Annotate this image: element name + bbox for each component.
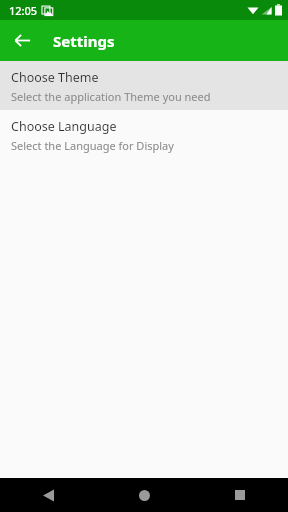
button[interactable]: Home bbox=[96, 478, 192, 512]
staticText: 12:05 bbox=[9, 3, 38, 18]
staticText: Select the application Theme you need bbox=[11, 89, 211, 104]
button[interactable]: Back bbox=[8, 26, 37, 55]
button[interactable]: Choose Language bbox=[0, 110, 288, 159]
button[interactable]: Recent apps bbox=[192, 478, 288, 512]
staticText: Settings bbox=[53, 31, 115, 51]
staticText: Choose Theme bbox=[11, 69, 99, 86]
staticText: Select the Language for Display bbox=[11, 138, 174, 153]
button[interactable]: Back bbox=[0, 478, 96, 512]
staticText: Choose Language bbox=[11, 118, 117, 135]
button[interactable]: Choose Theme bbox=[0, 61, 288, 110]
